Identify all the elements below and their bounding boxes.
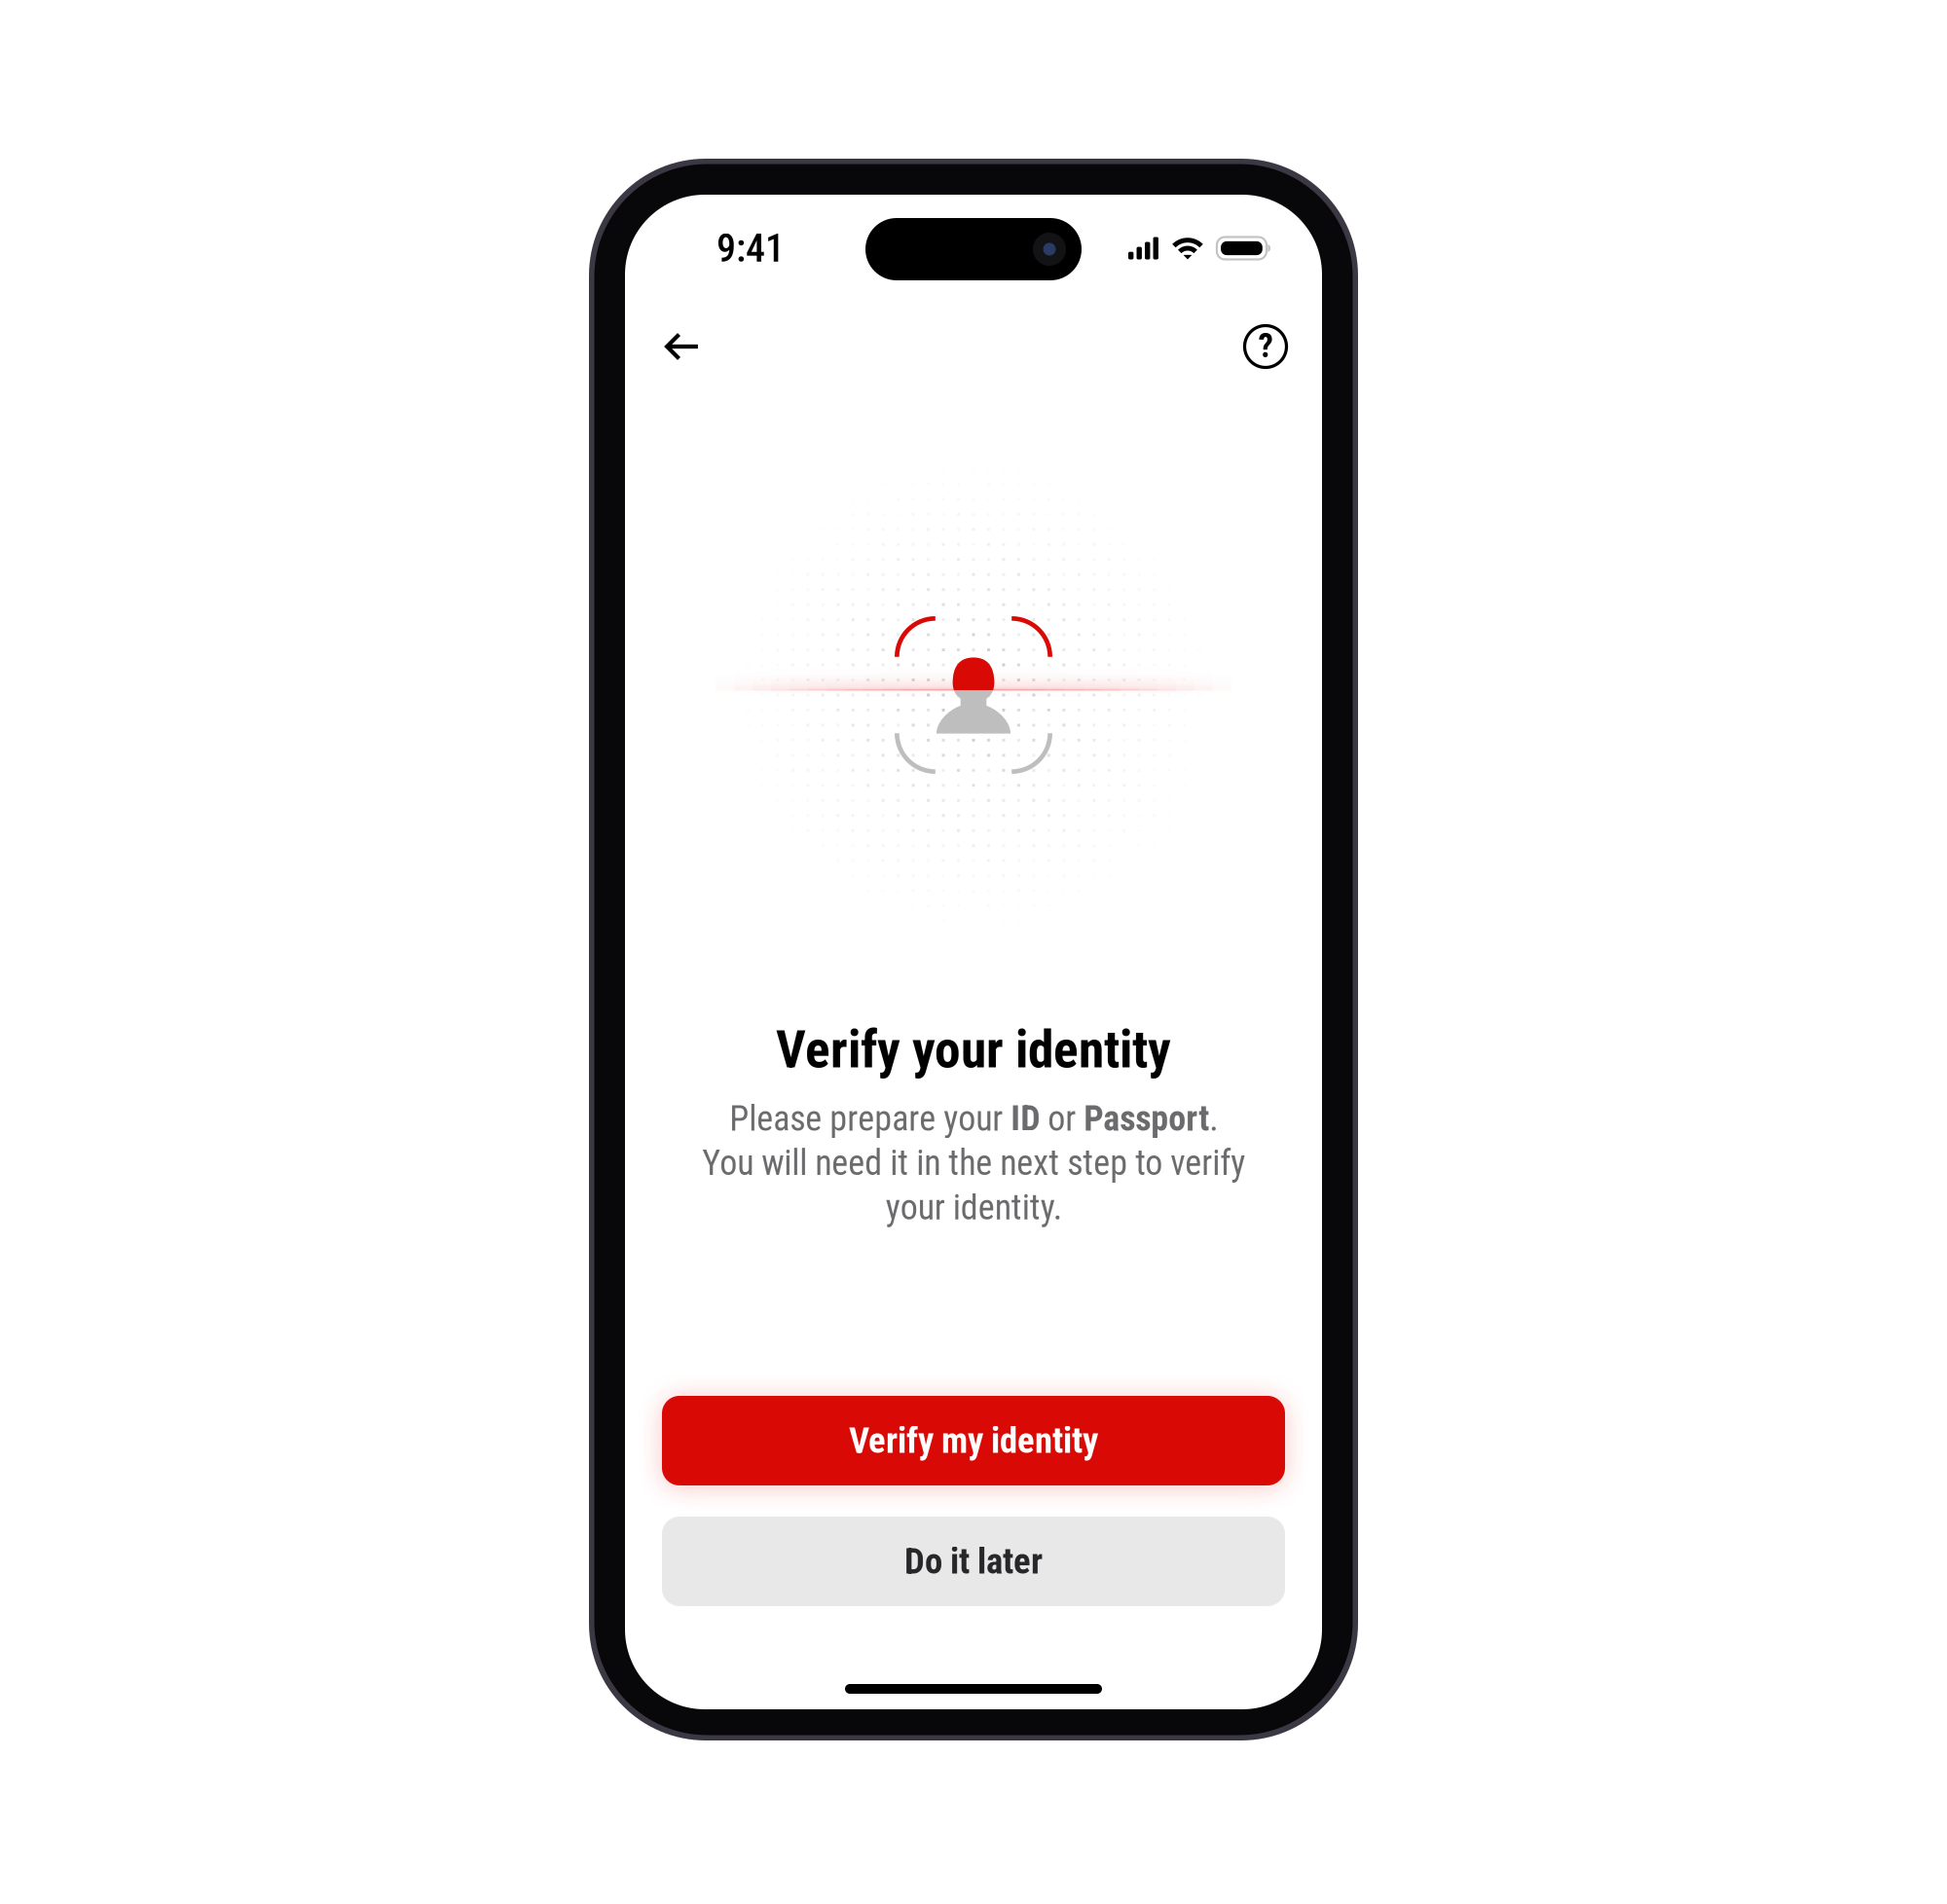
staticText: 9:41 [716, 225, 785, 271]
staticText: Please prepare your ID or Passport. You … [702, 1098, 1245, 1228]
button[interactable]: Verify my identity [662, 1396, 1285, 1485]
button[interactable]: Help [1225, 306, 1306, 387]
button[interactable]: Back [642, 306, 723, 387]
staticText: Do it later [904, 1540, 1043, 1582]
button[interactable]: Do it later [662, 1517, 1285, 1606]
staticText: Verify your identity [776, 1019, 1171, 1080]
staticText: Verify my identity [849, 1420, 1098, 1462]
staticText: ? [1258, 326, 1273, 365]
